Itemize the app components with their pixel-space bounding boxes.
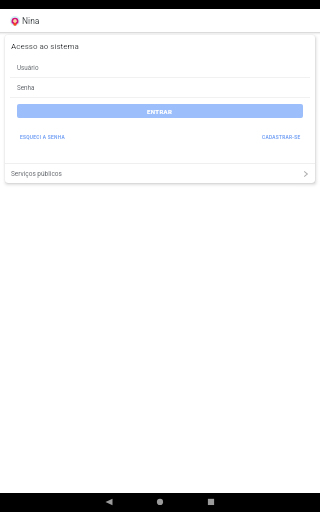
staticText: ENTRAR: [147, 108, 173, 115]
staticText: Nina: [22, 16, 40, 26]
staticText: Usuário: [17, 64, 39, 71]
staticText: Senha: [17, 84, 35, 91]
button[interactable]: ESQUECI A SENHA: [5, 129, 71, 147]
staticText: ESQUECI A SENHA: [20, 135, 65, 141]
button[interactable]: ENTRAR: [17, 104, 303, 118]
other: Nina: [10, 16, 20, 26]
other: Abrir serviços públicos: [302, 170, 310, 178]
button[interactable]: Recent apps: [190, 493, 232, 512]
button[interactable]: Senha: [10, 78, 310, 97]
button[interactable]: Back: [88, 493, 130, 512]
button[interactable]: CADASTRAR-SE: [256, 129, 315, 147]
staticText: Serviços públicos: [11, 170, 62, 178]
button[interactable]: Nina: [0, 16, 44, 26]
staticText: Acesso ao sistema: [11, 42, 79, 51]
button[interactable]: Usuário: [10, 58, 310, 77]
button[interactable]: Home: [139, 493, 181, 512]
button[interactable]: Serviços públicos: [5, 164, 315, 183]
staticText: CADASTRAR-SE: [262, 135, 301, 141]
